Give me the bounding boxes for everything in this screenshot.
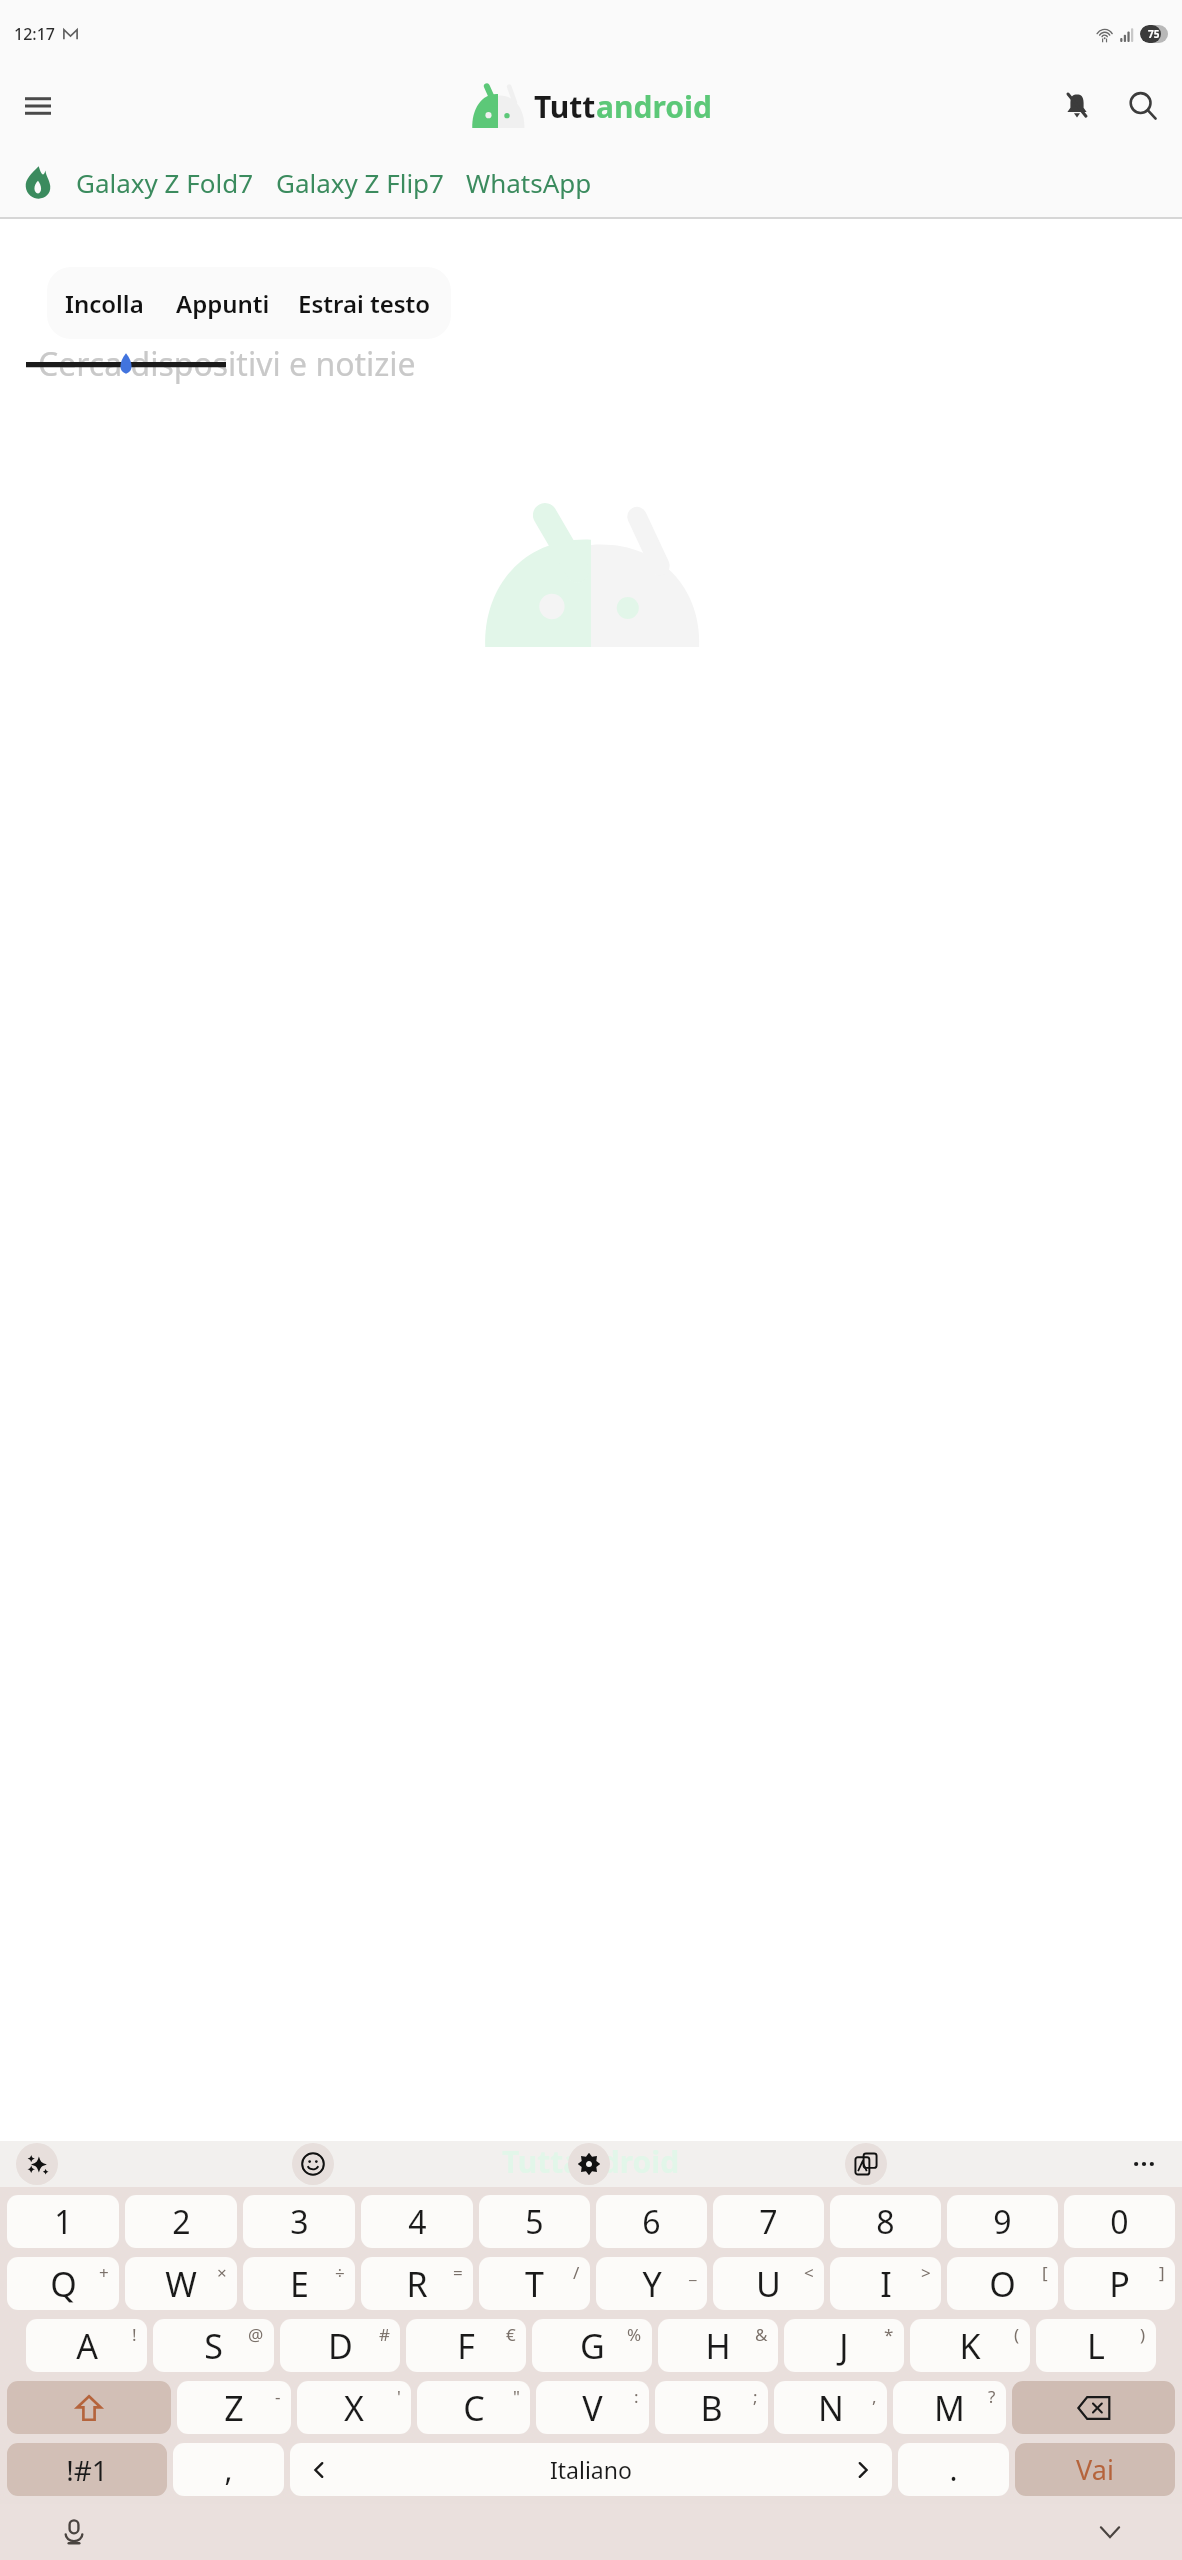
button[interactable]: J xyxy=(784,2319,904,2372)
staticText: C xyxy=(463,2385,485,2431)
button[interactable]: 6 xyxy=(596,2195,707,2248)
button[interactable]: 1 xyxy=(7,2195,119,2248)
button[interactable]: Incolla xyxy=(47,267,162,339)
button[interactable]: K xyxy=(910,2319,1030,2372)
button[interactable]: 3 xyxy=(243,2195,355,2248)
button[interactable]: F xyxy=(406,2319,526,2372)
button[interactable]: L xyxy=(1036,2319,1156,2372)
staticText: J xyxy=(839,2323,849,2369)
staticText: U xyxy=(756,2261,781,2307)
staticText: L xyxy=(1087,2323,1105,2369)
button[interactable]: X xyxy=(297,2381,411,2434)
button[interactable]: Z xyxy=(177,2381,291,2434)
staticText: 9 xyxy=(993,2200,1012,2244)
button[interactable]: U xyxy=(713,2257,824,2310)
button[interactable]: O xyxy=(947,2257,1058,2310)
button[interactable]: P xyxy=(1064,2257,1175,2310)
button[interactable]: 0 xyxy=(1064,2195,1175,2248)
staticText: ? xyxy=(988,2385,996,2408)
button[interactable]: More options xyxy=(1122,2142,1166,2186)
button[interactable]: B xyxy=(655,2381,768,2434)
button[interactable]: 5 xyxy=(479,2195,590,2248)
button[interactable]: T xyxy=(479,2257,590,2310)
button[interactable]: Q xyxy=(7,2257,119,2310)
button[interactable]: !#1 xyxy=(7,2443,167,2496)
staticText: > xyxy=(921,2261,931,2284)
button[interactable]: . xyxy=(898,2443,1009,2496)
button[interactable]: H xyxy=(658,2319,778,2372)
staticText: M xyxy=(934,2385,965,2431)
button[interactable]: 9 xyxy=(947,2195,1058,2248)
staticText: ÷ xyxy=(335,2261,345,2284)
button[interactable]: Appunti xyxy=(162,267,284,339)
button[interactable]: W xyxy=(125,2257,237,2310)
button[interactable]: V xyxy=(536,2381,649,2434)
button[interactable]: AI suggestions xyxy=(16,2143,58,2185)
button[interactable]: A xyxy=(26,2319,147,2372)
button[interactable]: Space xyxy=(290,2443,892,2496)
staticText: = xyxy=(453,2261,463,2284)
button[interactable]: Settings xyxy=(568,2143,610,2185)
staticText: ' xyxy=(397,2385,401,2408)
staticText: Tutt xyxy=(534,86,596,127)
button[interactable]: WhatsApp xyxy=(466,145,592,219)
button[interactable]: Trending xyxy=(12,156,64,208)
staticText: 8 xyxy=(876,2200,895,2244)
button[interactable]: D xyxy=(280,2319,400,2372)
staticText: K xyxy=(959,2323,981,2369)
button[interactable]: Backspace xyxy=(1012,2381,1175,2434)
staticText: O xyxy=(989,2261,1016,2307)
staticText: ; xyxy=(753,2385,758,2408)
staticText: X xyxy=(344,2385,364,2431)
staticText: Cerca dispositivi e notizie xyxy=(38,342,416,386)
staticText: 75 xyxy=(1148,27,1160,41)
staticText: Z xyxy=(224,2385,244,2431)
staticText: Vai xyxy=(1076,2451,1114,2488)
staticText: % xyxy=(627,2323,642,2346)
button[interactable]: 8 xyxy=(830,2195,941,2248)
button[interactable]: Y xyxy=(596,2257,707,2310)
button[interactable]: N xyxy=(774,2381,887,2434)
button[interactable]: , xyxy=(173,2443,284,2496)
button[interactable]: S xyxy=(153,2319,274,2372)
staticText: !#1 xyxy=(66,2451,108,2489)
button[interactable]: Shift xyxy=(7,2381,171,2434)
button[interactable]: Estrai testo xyxy=(284,267,445,339)
button[interactable]: Galaxy Z Flip7 xyxy=(276,145,444,219)
button[interactable]: Menu xyxy=(10,78,66,134)
button[interactable]: Galaxy Z Fold7 xyxy=(76,145,254,219)
staticText: 3 xyxy=(290,2200,309,2244)
staticText: × xyxy=(217,2261,227,2284)
staticText: Y xyxy=(642,2261,662,2307)
staticText: G xyxy=(580,2323,605,2369)
staticText: S xyxy=(204,2323,223,2369)
button[interactable]: Search xyxy=(1114,77,1172,135)
button[interactable]: 4 xyxy=(361,2195,473,2248)
button[interactable]: R xyxy=(361,2257,473,2310)
button[interactable]: I xyxy=(830,2257,941,2310)
staticText: WhatsApp xyxy=(466,165,592,200)
staticText: E xyxy=(290,2261,309,2307)
staticText: < xyxy=(804,2261,814,2284)
button[interactable]: 7 xyxy=(713,2195,824,2248)
button[interactable]: Hide keyboard xyxy=(1086,2508,1134,2556)
staticText: H xyxy=(705,2323,731,2369)
button[interactable]: C xyxy=(417,2381,530,2434)
staticText: 0 xyxy=(1110,2200,1129,2244)
button[interactable]: Notifications off xyxy=(1048,77,1106,135)
staticText: Italiano xyxy=(550,2454,632,2485)
staticText: 4 xyxy=(408,2200,427,2244)
button[interactable]: M xyxy=(893,2381,1006,2434)
button[interactable]: Translate xyxy=(845,2143,887,2185)
button[interactable]: 2 xyxy=(125,2195,237,2248)
staticText: android xyxy=(596,86,712,127)
staticText: T xyxy=(525,2261,544,2307)
button[interactable]: G xyxy=(532,2319,652,2372)
staticText: ( xyxy=(1014,2323,1020,2346)
button[interactable]: Emoji xyxy=(292,2143,334,2185)
staticText: , xyxy=(224,2449,233,2490)
staticText: P xyxy=(1109,2261,1130,2307)
button[interactable]: Vai xyxy=(1015,2443,1175,2496)
button[interactable]: E xyxy=(243,2257,355,2310)
button[interactable]: Voice input xyxy=(50,2508,98,2556)
